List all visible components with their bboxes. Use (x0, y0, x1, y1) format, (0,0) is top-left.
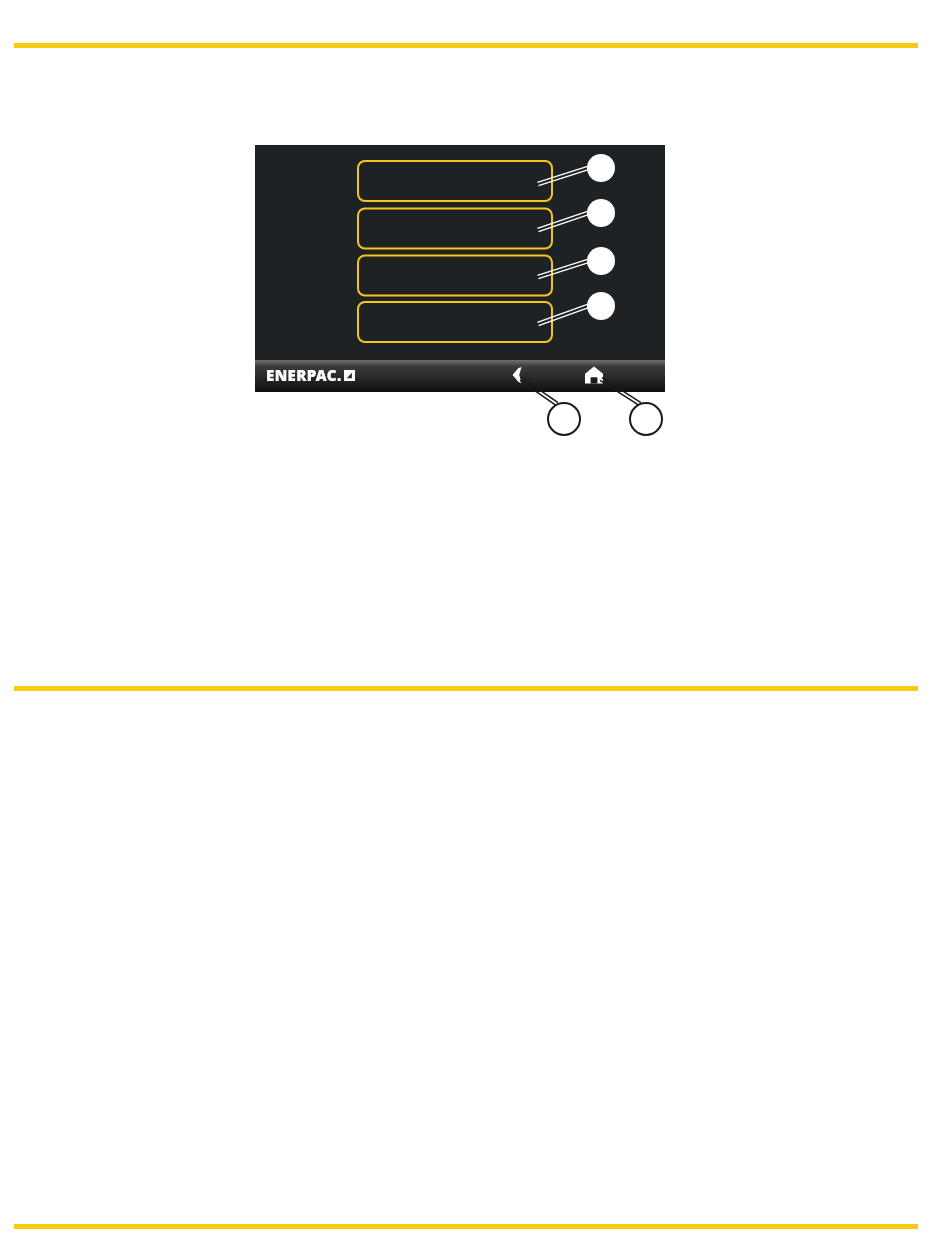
staticText: ENERPAC. (266, 365, 342, 385)
button[interactable]: Menu option 3 (358, 255, 552, 295)
button[interactable]: Home (579, 360, 611, 390)
button[interactable]: Back (502, 360, 534, 390)
button[interactable]: Menu option 2 (358, 208, 552, 248)
button[interactable]: Menu option 1 (358, 161, 552, 201)
button[interactable]: Menu option 4 (358, 302, 552, 342)
